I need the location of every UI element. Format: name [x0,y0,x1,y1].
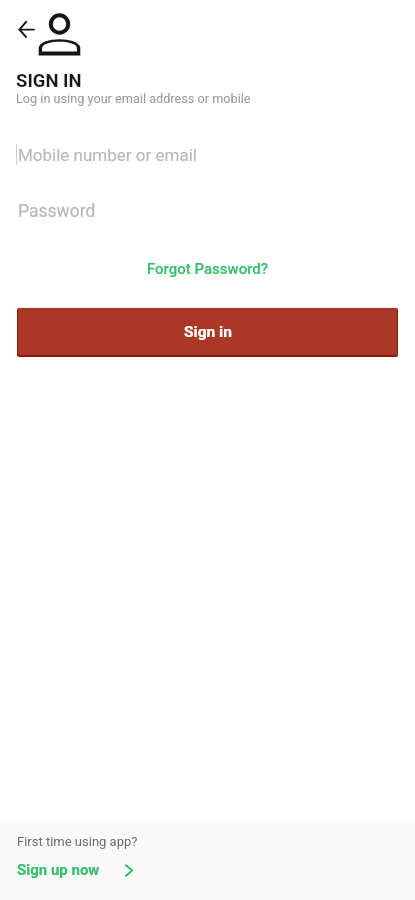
button[interactable]: Mobile number or email [0,132,415,177]
staticText: Password [18,201,96,222]
button[interactable]: Forgot Password? [137,255,279,283]
staticText: SIGN IN [16,70,82,92]
button[interactable]: Back [8,14,42,48]
staticText: Sign up now [17,861,100,879]
staticText: Mobile number or email [18,145,197,165]
staticText: Forgot Password? [147,260,269,278]
staticText: First time using app? [17,834,138,849]
button[interactable]: Sign in [18,308,397,355]
staticText: Sign in [184,323,232,341]
staticText: Log in using your email address or mobil… [16,91,251,106]
button[interactable]: Password [0,189,415,234]
button[interactable]: Sign up now [0,859,146,883]
